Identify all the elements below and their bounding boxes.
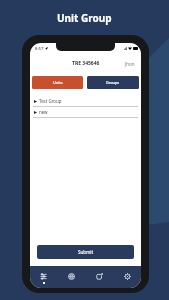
staticText: Unit Group xyxy=(57,11,112,25)
staticText: Test Group xyxy=(39,98,62,104)
staticText: 8:57 xyxy=(35,46,44,52)
staticText: Submit xyxy=(78,249,94,255)
button[interactable]: Submit xyxy=(37,245,134,259)
button[interactable]: Groups xyxy=(87,76,139,89)
button[interactable]: Units xyxy=(32,76,83,89)
button[interactable]: Test Group xyxy=(30,96,141,107)
button[interactable]: Scan xyxy=(85,266,113,288)
button[interactable]: Settings xyxy=(113,266,141,288)
staticText: Groups xyxy=(106,80,120,85)
button[interactable]: new xyxy=(30,107,141,118)
button[interactable]: Map xyxy=(57,266,85,288)
staticText: Units xyxy=(53,80,63,85)
staticText: new xyxy=(39,109,48,115)
staticText: TRE 345646 xyxy=(72,60,100,67)
button[interactable]: Filter xyxy=(30,266,57,288)
staticText: Jhon xyxy=(125,61,135,67)
